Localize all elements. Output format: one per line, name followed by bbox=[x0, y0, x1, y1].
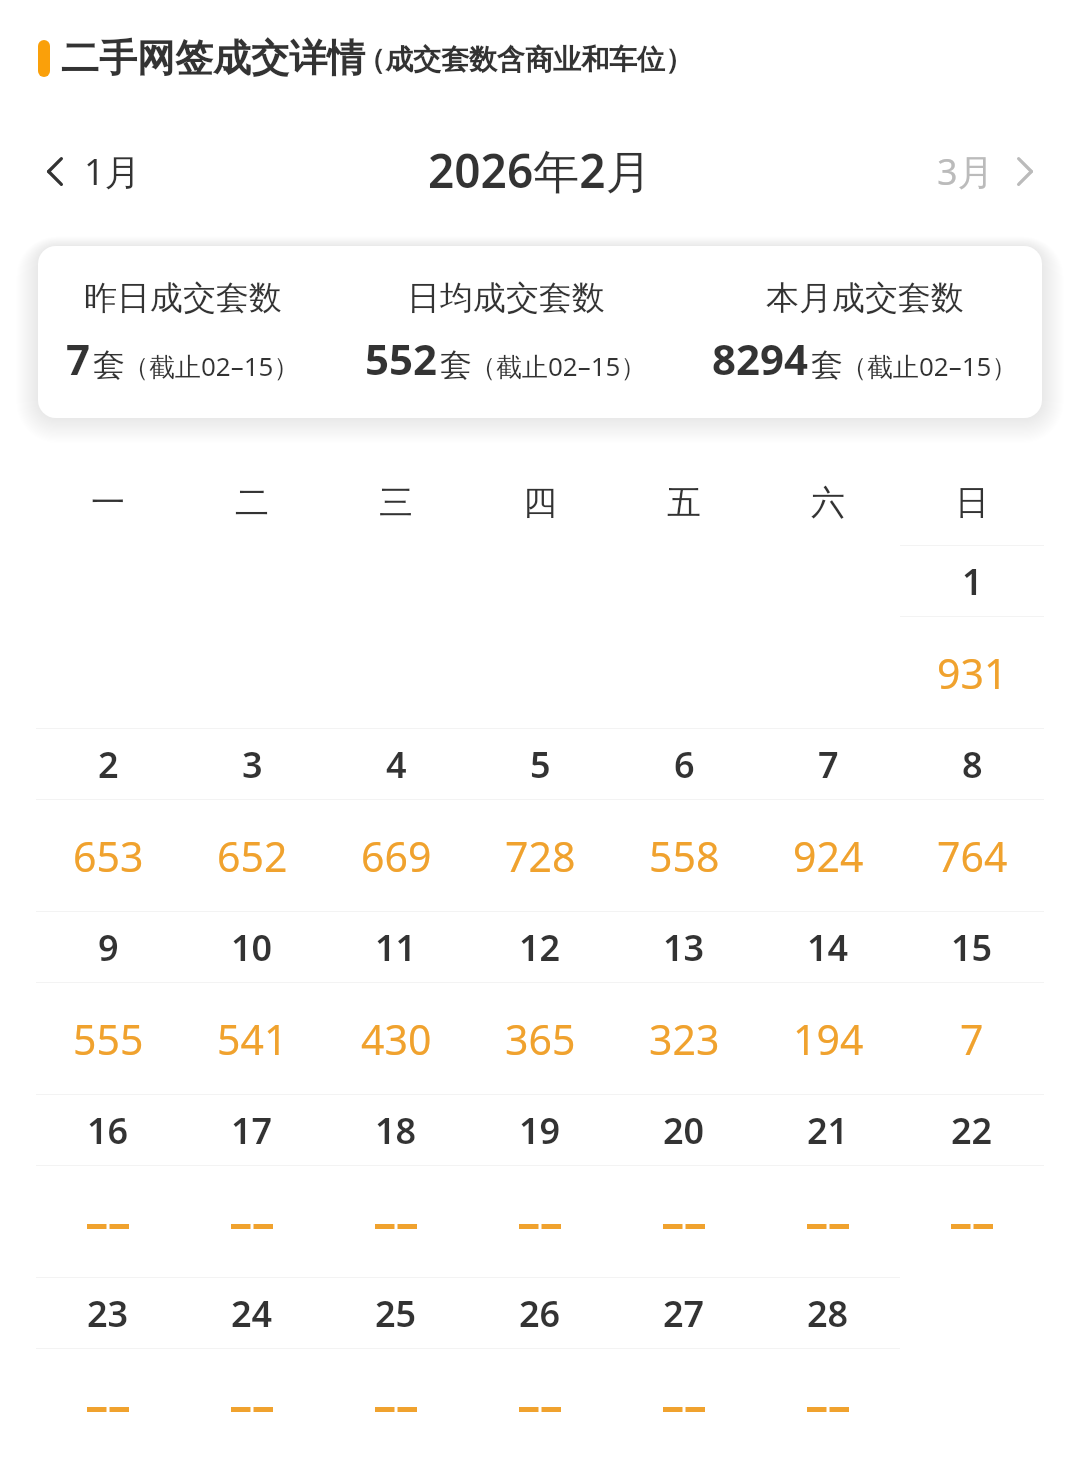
staticText: 541 bbox=[217, 1011, 288, 1067]
staticText: 26 bbox=[519, 1289, 561, 1338]
staticText: 3月 bbox=[937, 147, 994, 196]
staticText: 17 bbox=[231, 1106, 273, 1155]
staticText: 7 bbox=[66, 330, 91, 387]
staticText: 套 bbox=[811, 345, 843, 385]
staticText: 924 bbox=[793, 828, 864, 884]
staticText: 7 bbox=[960, 1011, 984, 1067]
staticText: 8 bbox=[962, 740, 983, 789]
staticText: 16 bbox=[87, 1106, 129, 1155]
button[interactable]: 18 bbox=[324, 1094, 468, 1277]
staticText: 四 bbox=[523, 481, 557, 524]
button[interactable]: 11 bbox=[324, 911, 468, 1094]
staticText: 365 bbox=[505, 1011, 576, 1067]
staticText: （截止02–15） bbox=[841, 348, 1018, 384]
staticText: 728 bbox=[505, 828, 576, 884]
staticText: 653 bbox=[73, 828, 144, 884]
button[interactable]: 16 bbox=[36, 1094, 180, 1277]
staticText: （成交套数含商业和车位） bbox=[357, 42, 693, 77]
staticText: 652 bbox=[217, 828, 288, 884]
button[interactable]: 9 bbox=[36, 911, 180, 1094]
button[interactable]: 24 bbox=[180, 1277, 324, 1460]
staticText: 7 bbox=[818, 740, 839, 789]
staticText: 23 bbox=[87, 1289, 129, 1338]
button[interactable]: 12 bbox=[468, 911, 612, 1094]
button[interactable]: 1 bbox=[900, 545, 1044, 728]
button[interactable]: 7 bbox=[756, 728, 900, 911]
staticText: 11 bbox=[375, 923, 417, 972]
staticText: 323 bbox=[649, 1011, 720, 1067]
staticText: （截止02–15） bbox=[123, 348, 300, 384]
button[interactable]: 25 bbox=[324, 1277, 468, 1460]
staticText: 552 bbox=[365, 330, 438, 387]
button[interactable]: 8 bbox=[900, 728, 1044, 911]
staticText: 1 bbox=[962, 557, 983, 606]
staticText: 12 bbox=[519, 923, 561, 972]
button[interactable]: 21 bbox=[756, 1094, 900, 1277]
staticText: 931 bbox=[937, 645, 1008, 701]
button[interactable]: 22 bbox=[900, 1094, 1044, 1277]
staticText: 18 bbox=[375, 1106, 417, 1155]
staticText: （截止02–15） bbox=[470, 348, 647, 384]
button[interactable]: 6 bbox=[612, 728, 756, 911]
staticText: 13 bbox=[663, 923, 705, 972]
staticText: 22 bbox=[951, 1106, 993, 1155]
staticText: 27 bbox=[663, 1289, 705, 1338]
button[interactable]: 3月 bbox=[937, 147, 1033, 196]
staticText: 3 bbox=[242, 740, 263, 789]
button[interactable]: 28 bbox=[756, 1277, 900, 1460]
staticText: 2 bbox=[98, 740, 119, 789]
staticText: 430 bbox=[361, 1011, 432, 1067]
staticText: 14 bbox=[807, 923, 849, 972]
staticText: 三 bbox=[379, 481, 413, 524]
staticText: 15 bbox=[951, 923, 993, 972]
button[interactable]: 10 bbox=[180, 911, 324, 1094]
button[interactable]: 13 bbox=[612, 911, 756, 1094]
staticText: 套 bbox=[93, 345, 125, 385]
button[interactable]: 2 bbox=[36, 728, 180, 911]
staticText: 669 bbox=[361, 828, 432, 884]
button[interactable]: 14 bbox=[756, 911, 900, 1094]
staticText: 日均成交套数 bbox=[407, 277, 605, 319]
button[interactable]: 4 bbox=[324, 728, 468, 911]
staticText: 19 bbox=[519, 1106, 561, 1155]
staticText: 4 bbox=[386, 740, 407, 789]
staticText: 558 bbox=[649, 828, 720, 884]
staticText: 2026年2月 bbox=[428, 139, 652, 202]
staticText: 5 bbox=[530, 740, 551, 789]
button[interactable]: 17 bbox=[180, 1094, 324, 1277]
staticText: 二手网签成交详情 bbox=[61, 34, 365, 82]
staticText: 1月 bbox=[84, 147, 141, 196]
button[interactable]: 15 bbox=[900, 911, 1044, 1094]
staticText: 日 bbox=[955, 481, 989, 524]
staticText: 21 bbox=[807, 1106, 849, 1155]
staticText: 一 bbox=[91, 481, 125, 524]
button[interactable]: 27 bbox=[612, 1277, 756, 1460]
staticText: 24 bbox=[231, 1289, 273, 1338]
staticText: 764 bbox=[937, 828, 1008, 884]
button[interactable]: 3 bbox=[180, 728, 324, 911]
staticText: 本月成交套数 bbox=[766, 277, 964, 319]
button[interactable]: 26 bbox=[468, 1277, 612, 1460]
staticText: 套 bbox=[440, 345, 472, 385]
staticText: 8294 bbox=[712, 330, 809, 387]
button[interactable]: Previous month bbox=[47, 147, 141, 196]
staticText: 28 bbox=[807, 1289, 849, 1338]
staticText: 10 bbox=[231, 923, 273, 972]
button[interactable]: 23 bbox=[36, 1277, 180, 1460]
staticText: 194 bbox=[793, 1011, 864, 1067]
button[interactable]: 5 bbox=[468, 728, 612, 911]
other: Next month bbox=[1017, 157, 1033, 186]
staticText: 六 bbox=[811, 481, 845, 524]
other: Previous month bbox=[47, 157, 63, 186]
button[interactable]: 19 bbox=[468, 1094, 612, 1277]
staticText: 25 bbox=[375, 1289, 417, 1338]
staticText: 9 bbox=[98, 923, 119, 972]
staticText: 五 bbox=[667, 481, 701, 524]
staticText: 20 bbox=[663, 1106, 705, 1155]
staticText: 555 bbox=[73, 1011, 144, 1067]
button[interactable]: 20 bbox=[612, 1094, 756, 1277]
staticText: 6 bbox=[674, 740, 695, 789]
staticText: 二 bbox=[235, 481, 269, 524]
staticText: 昨日成交套数 bbox=[84, 277, 282, 319]
